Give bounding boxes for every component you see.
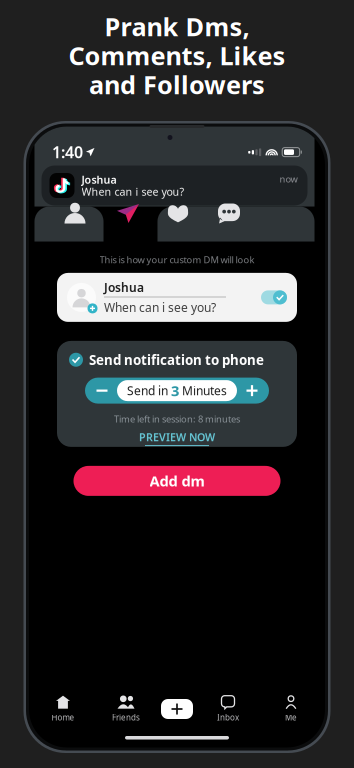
staticText: PREVIEW NOW [139,430,215,444]
button[interactable]: Direct messages [115,199,140,227]
button[interactable]: Increase minutes [237,378,267,403]
staticText: Me [285,712,297,723]
button[interactable]: Decrease minutes [87,378,117,403]
staticText: This is how your custom DM will look [99,253,254,266]
staticText: 3 [171,381,179,400]
button[interactable]: Inbox [200,693,256,725]
staticText: Joshua [104,279,144,295]
button[interactable]: Create [161,699,193,719]
button[interactable]: Likes [140,199,215,227]
staticText: Inbox [217,712,239,723]
staticText: When can i see you? [104,299,216,315]
staticText: and Followers [89,68,265,101]
staticText: now [279,173,297,185]
staticText: 1:40 [52,141,83,163]
button[interactable]: Profile [34,199,115,227]
staticText: Home [51,712,74,723]
button[interactable]: Me [263,693,319,725]
button[interactable]: Friends [98,693,154,725]
staticText: Joshua [81,172,116,187]
staticText: When can i see you? [81,184,184,199]
staticText: Time left in session: 8 minutes [114,413,240,425]
button[interactable]: Add dm [73,466,280,496]
staticText: Add dm [149,471,204,491]
staticText: Prank Dms, [104,10,249,43]
button[interactable]: Comments [215,199,242,227]
button[interactable]: Home [35,693,91,725]
staticText: Send in [127,383,168,398]
staticText: Send notification to phone [89,351,264,369]
button[interactable]: PREVIEW NOW [139,430,215,446]
staticText: Comments, Likes [68,39,285,72]
staticText: Minutes [182,383,227,398]
staticText: Friends [112,712,140,723]
